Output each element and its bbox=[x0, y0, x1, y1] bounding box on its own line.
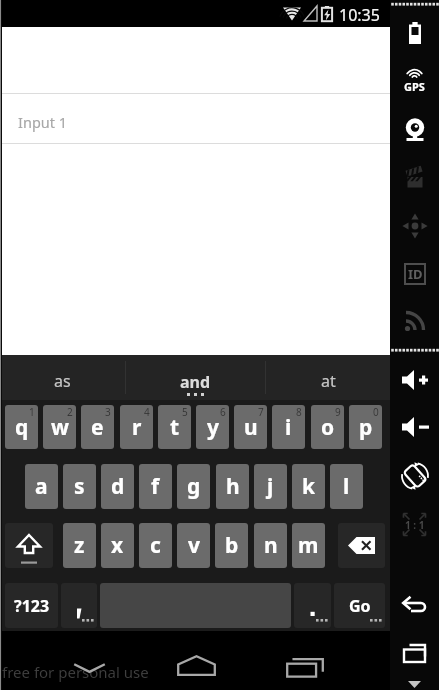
staticText: f bbox=[151, 472, 160, 501]
button[interactable]: at bbox=[266, 355, 390, 400]
staticText: y bbox=[207, 413, 219, 442]
button[interactable]: z bbox=[63, 523, 96, 568]
staticText: t bbox=[170, 413, 180, 442]
staticText: i bbox=[285, 413, 292, 442]
staticText: s bbox=[74, 472, 85, 501]
button[interactable]: r bbox=[120, 405, 153, 449]
staticText: and bbox=[180, 371, 211, 393]
button[interactable]: v bbox=[177, 523, 210, 568]
button[interactable]: u bbox=[234, 405, 267, 449]
button[interactable]: Back bbox=[399, 589, 431, 621]
staticText: 4 bbox=[144, 405, 150, 419]
button[interactable]: Go bbox=[334, 583, 385, 628]
staticText: 1 : 1 bbox=[405, 518, 425, 532]
staticText: 1 bbox=[29, 405, 35, 419]
button[interactable]: o bbox=[311, 405, 344, 449]
staticText: n bbox=[264, 531, 278, 560]
button[interactable]: GPS bbox=[397, 67, 432, 95]
button[interactable]: m bbox=[292, 523, 325, 568]
staticText: z bbox=[74, 531, 85, 560]
button[interactable]: c bbox=[139, 523, 172, 568]
staticText: p bbox=[359, 413, 373, 442]
staticText: 9 bbox=[335, 405, 341, 419]
button[interactable]: a bbox=[25, 464, 58, 509]
button[interactable]: f bbox=[139, 464, 172, 509]
staticText: x bbox=[111, 531, 124, 560]
button[interactable]: Record bbox=[400, 163, 430, 193]
button[interactable]: and bbox=[126, 355, 265, 400]
staticText: r bbox=[132, 413, 142, 442]
button[interactable]: Rotate bbox=[399, 460, 431, 492]
button[interactable]: Webcam bbox=[399, 114, 431, 146]
button[interactable]: Period bbox=[294, 583, 331, 628]
button[interactable]: Cellular bbox=[400, 305, 430, 335]
button[interactable]: h bbox=[216, 464, 249, 509]
button[interactable]: t bbox=[158, 405, 191, 449]
button[interactable]: k bbox=[292, 464, 325, 509]
staticText: 0 bbox=[373, 405, 379, 419]
button[interactable]: p bbox=[349, 405, 382, 449]
button[interactable]: Device ID bbox=[404, 263, 426, 285]
staticText: 5 bbox=[182, 405, 188, 419]
button[interactable]: i bbox=[272, 405, 305, 449]
button[interactable]: y bbox=[196, 405, 229, 449]
staticText: w bbox=[51, 413, 69, 442]
staticText: g bbox=[187, 472, 201, 501]
staticText: 7 bbox=[258, 405, 264, 419]
button[interactable]: n bbox=[254, 523, 287, 568]
button[interactable]: j bbox=[254, 464, 287, 509]
staticText: e bbox=[91, 413, 104, 442]
staticText: k bbox=[302, 472, 316, 501]
staticText: 2 bbox=[67, 405, 73, 419]
button[interactable]: Overview bbox=[400, 639, 430, 669]
button[interactable]: Home bbox=[168, 648, 224, 682]
staticText: free for personal use bbox=[2, 662, 149, 682]
button[interactable]: Volume down bbox=[400, 412, 430, 442]
staticText: GPS bbox=[404, 79, 425, 94]
staticText: q bbox=[15, 413, 29, 442]
button[interactable]: g bbox=[177, 464, 210, 509]
button[interactable]: l bbox=[330, 464, 363, 509]
button[interactable]: x bbox=[101, 523, 134, 568]
staticText: b bbox=[225, 531, 239, 560]
staticText: Go bbox=[349, 595, 371, 617]
button[interactable]: Hide keyboard bbox=[61, 651, 117, 685]
staticText: o bbox=[321, 413, 335, 442]
button[interactable]: e bbox=[81, 405, 114, 449]
staticText: u bbox=[244, 413, 258, 442]
staticText: as bbox=[54, 370, 71, 392]
button[interactable]: Comma bbox=[61, 583, 97, 628]
button[interactable]: ?123 bbox=[5, 583, 58, 628]
button[interactable]: s bbox=[63, 464, 96, 509]
staticText: Input 1 bbox=[18, 112, 68, 132]
button[interactable]: Volume up bbox=[400, 365, 430, 395]
button[interactable]: Recent apps bbox=[277, 650, 333, 684]
button[interactable]: d bbox=[101, 464, 134, 509]
button[interactable]: Backspace bbox=[338, 523, 385, 568]
staticText: at bbox=[321, 370, 336, 392]
staticText: 10:35 bbox=[339, 4, 380, 26]
button[interactable]: Battery bbox=[400, 18, 430, 48]
button[interactable]: q bbox=[5, 405, 38, 449]
button[interactable]: w bbox=[43, 405, 76, 449]
staticText: ?123 bbox=[14, 595, 50, 617]
staticText: 3 bbox=[105, 405, 111, 419]
staticText: a bbox=[35, 472, 48, 501]
staticText: h bbox=[226, 472, 240, 501]
button[interactable]: Zoom 1:1 bbox=[402, 512, 427, 537]
staticText: j bbox=[267, 472, 274, 501]
staticText: c bbox=[150, 531, 161, 560]
button[interactable]: b bbox=[215, 523, 248, 568]
staticText: v bbox=[188, 531, 200, 560]
staticText: 6 bbox=[220, 405, 226, 419]
button[interactable]: Shift bbox=[5, 523, 53, 568]
staticText: l bbox=[343, 472, 350, 501]
button[interactable]: D-pad bbox=[400, 211, 430, 241]
staticText: m bbox=[298, 531, 319, 560]
button[interactable]: as bbox=[0, 355, 125, 400]
staticText: ID bbox=[408, 265, 423, 283]
staticText: 8 bbox=[296, 405, 302, 419]
staticText: d bbox=[111, 472, 125, 501]
